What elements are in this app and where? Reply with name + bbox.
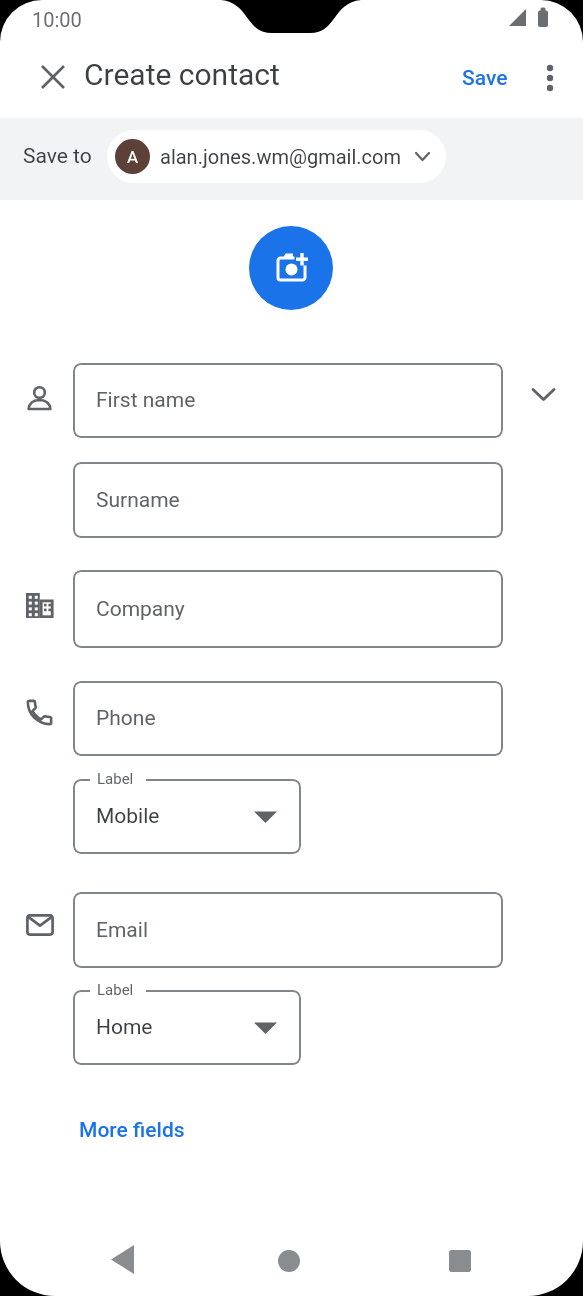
button[interactable] [438,1240,482,1282]
button[interactable]: Home [73,990,301,1065]
staticText: Label [97,981,134,999]
staticText: Create contact [84,57,280,92]
button[interactable]: Mobile [73,779,301,854]
button[interactable] [267,1240,311,1282]
staticText: Company [96,597,185,622]
button[interactable]: First name [73,363,503,438]
button[interactable]: Email [73,892,503,968]
staticText: alan.jones.wm@gmail.com [160,145,401,168]
staticText: 10:00 [32,8,82,31]
staticText: Home [96,1015,153,1040]
button[interactable] [536,56,564,100]
staticText: A [127,147,139,167]
button[interactable]: Phone [73,681,503,756]
staticText: Mobile [96,804,160,829]
button[interactable]: Save [462,66,508,91]
staticText: Surname [96,488,180,513]
button[interactable] [249,226,333,310]
button[interactable]: More fields [79,1118,185,1143]
button[interactable] [30,54,74,98]
staticText: Phone [96,706,156,731]
staticText: First name [96,388,196,413]
button[interactable] [100,1240,146,1280]
button[interactable]: Company [73,570,503,648]
staticText: Save to [23,144,92,169]
button[interactable]: A [107,130,446,183]
staticText: Label [97,770,134,788]
button[interactable] [532,388,555,401]
button[interactable]: Surname [73,462,503,538]
staticText: Email [96,918,148,943]
